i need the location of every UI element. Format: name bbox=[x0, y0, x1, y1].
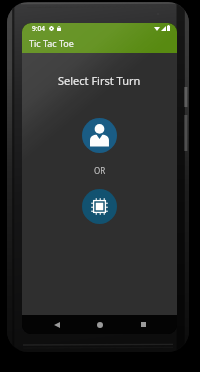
staticText: 9:04 bbox=[32, 24, 45, 33]
button[interactable]: Recent apps bbox=[132, 315, 154, 334]
button[interactable]: Play first - human bbox=[82, 118, 117, 153]
button[interactable]: Back bbox=[46, 315, 68, 334]
staticText: Tic Tac Toe bbox=[29, 37, 74, 49]
staticText: OR bbox=[94, 165, 106, 176]
button[interactable]: Play first - computer bbox=[82, 189, 117, 224]
button[interactable]: Home bbox=[89, 315, 111, 334]
staticText: Select First Turn bbox=[58, 73, 141, 88]
